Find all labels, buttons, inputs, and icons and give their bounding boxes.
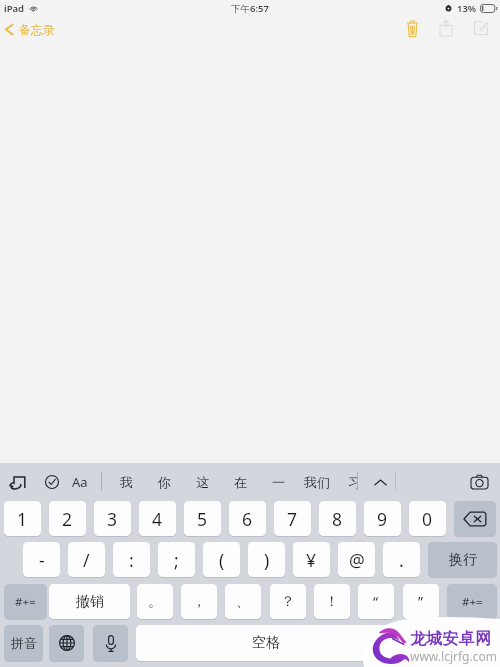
button[interactable]: 在 — [221, 468, 259, 495]
staticText: 空格 — [252, 634, 280, 652]
button[interactable]: - — [23, 542, 60, 577]
staticText: 在 — [234, 474, 247, 490]
button[interactable]: ; — [158, 542, 195, 577]
button[interactable]: 习 — [348, 468, 358, 495]
button[interactable]: Camera — [466, 469, 492, 495]
staticText: 备忘录 — [19, 22, 55, 37]
button[interactable]: 拼音 — [4, 625, 43, 661]
button[interactable]: 撤销 — [49, 584, 130, 619]
staticText: @ — [349, 548, 365, 572]
button[interactable]: 7 — [274, 501, 311, 536]
button[interactable]: 、 — [225, 584, 261, 619]
staticText: 。 — [148, 593, 162, 611]
button[interactable]: 1 — [4, 501, 41, 536]
staticText: 3 — [107, 507, 118, 531]
button[interactable]: 4 — [139, 501, 176, 536]
staticText: 4 — [152, 507, 163, 531]
button[interactable]: 3 — [94, 501, 131, 536]
staticText: 龙城安卓网 — [410, 629, 491, 649]
staticText: . — [399, 548, 404, 572]
staticText: 你 — [158, 474, 171, 490]
staticText: 这 — [196, 474, 209, 490]
button[interactable]: 备忘录 — [4, 19, 55, 39]
button[interactable]: / — [68, 542, 105, 577]
button[interactable]: 空格 — [136, 625, 396, 661]
button[interactable]: ( — [203, 542, 240, 577]
staticText: 换行 — [449, 551, 477, 569]
staticText: “ — [373, 592, 379, 611]
staticText: ¥ — [306, 548, 317, 572]
button[interactable]: 这 — [183, 468, 221, 495]
button[interactable]: Aa — [67, 469, 93, 495]
staticText: iPad — [4, 2, 25, 15]
button[interactable]: 我 — [107, 468, 145, 495]
staticText: 0 — [422, 507, 433, 531]
staticText: ？ — [281, 593, 295, 611]
staticText: - — [39, 548, 45, 572]
staticText: #+= — [15, 594, 36, 610]
button[interactable]: Share — [430, 15, 462, 41]
button[interactable]: 我们 — [297, 468, 337, 495]
staticText: 撤销 — [76, 593, 104, 611]
staticText: ; — [174, 548, 179, 572]
staticText: 下午6:57 — [231, 2, 269, 15]
button[interactable]: Collapse — [367, 469, 393, 495]
button[interactable]: Backspace — [454, 501, 496, 536]
button[interactable]: 一 — [259, 468, 297, 495]
button[interactable]: ？ — [270, 584, 306, 619]
button[interactable]: ) — [248, 542, 285, 577]
staticText: ( — [219, 548, 225, 572]
button[interactable]: 6 — [229, 501, 266, 536]
button[interactable]: 0 — [409, 501, 446, 536]
button[interactable]: Compose — [465, 15, 497, 41]
staticText: 一 — [272, 474, 285, 490]
staticText: 6 — [242, 507, 253, 531]
staticText: 2 — [62, 507, 73, 531]
staticText: 、 — [236, 593, 250, 611]
button[interactable]: ！ — [314, 584, 350, 619]
button[interactable]: ¥ — [293, 542, 330, 577]
button[interactable]: : — [113, 542, 150, 577]
staticText: / — [83, 548, 90, 572]
staticText: 我们 — [304, 474, 330, 490]
staticText: 1 — [17, 507, 28, 531]
staticText: 13% — [457, 2, 477, 15]
button[interactable]: 你 — [145, 468, 183, 495]
staticText: ， — [192, 593, 206, 611]
button[interactable]: Change keyboard — [49, 625, 84, 661]
button[interactable]: Undo — [5, 469, 31, 495]
staticText: #+= — [462, 594, 483, 610]
button[interactable]: . — [383, 542, 420, 577]
button[interactable]: 。 — [137, 584, 173, 619]
staticText: 我 — [120, 474, 133, 490]
staticText: ” — [418, 592, 424, 611]
button[interactable]: Dictation — [93, 625, 128, 661]
button[interactable]: ， — [181, 584, 217, 619]
staticText: 习 — [348, 474, 358, 490]
staticText: 7 — [287, 507, 298, 531]
staticText: Aa — [72, 473, 88, 491]
staticText: ！ — [325, 593, 339, 611]
button[interactable]: 5 — [184, 501, 221, 536]
button[interactable]: 2 — [49, 501, 86, 536]
staticText: www.lcjrfg.com — [410, 648, 497, 664]
button[interactable]: @ — [338, 542, 375, 577]
button[interactable]: 换行 — [428, 542, 497, 577]
button[interactable]: “ — [358, 584, 394, 619]
staticText: 5 — [197, 507, 208, 531]
button[interactable]: #+= — [447, 584, 497, 619]
button[interactable]: Delete — [396, 15, 428, 41]
staticText: 8 — [332, 507, 343, 531]
button[interactable]: 8 — [319, 501, 356, 536]
button[interactable]: ” — [403, 584, 439, 619]
staticText: 拼音 — [11, 635, 37, 651]
staticText: : — [129, 548, 134, 572]
staticText: 9 — [377, 507, 388, 531]
button[interactable]: Checklist — [39, 469, 65, 495]
button[interactable]: 9 — [364, 501, 401, 536]
button[interactable]: #+= — [4, 584, 47, 619]
staticText: ) — [264, 548, 270, 572]
